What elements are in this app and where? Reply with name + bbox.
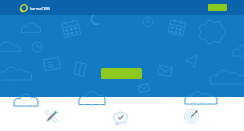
button[interactable]: Conversations: [107, 105, 134, 131]
button[interactable]: karmaCRM: [20, 4, 50, 12]
staticText: karmaCRM: [30, 6, 50, 11]
button[interactable]: Goals: [178, 103, 205, 130]
button[interactable]: Design and build: [38, 103, 65, 130]
button[interactable]: Sign up free: [208, 4, 227, 11]
button[interactable]: Get started: [101, 68, 142, 79]
